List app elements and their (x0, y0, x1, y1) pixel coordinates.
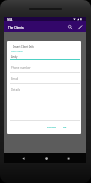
button[interactable]: Search (66, 23, 74, 31)
staticText: Phone number (11, 66, 31, 70)
staticText: Email (11, 77, 19, 81)
button[interactable]: OK (61, 122, 69, 131)
button[interactable]: Recents (62, 153, 74, 163)
staticText: Andy (11, 55, 18, 59)
button[interactable]: Back (17, 153, 29, 163)
staticText: OK (63, 125, 67, 128)
staticText: Details (11, 88, 20, 92)
staticText: 9:04 (7, 18, 13, 22)
staticText: CANCEL (47, 125, 57, 128)
button[interactable]: Edit (76, 23, 84, 31)
staticText: Client Name (11, 50, 23, 53)
button[interactable]: Home (40, 153, 52, 163)
button[interactable]: CANCEL (45, 122, 59, 131)
staticText: Insert Client Info (13, 45, 34, 49)
staticText: The Clients (8, 26, 24, 30)
